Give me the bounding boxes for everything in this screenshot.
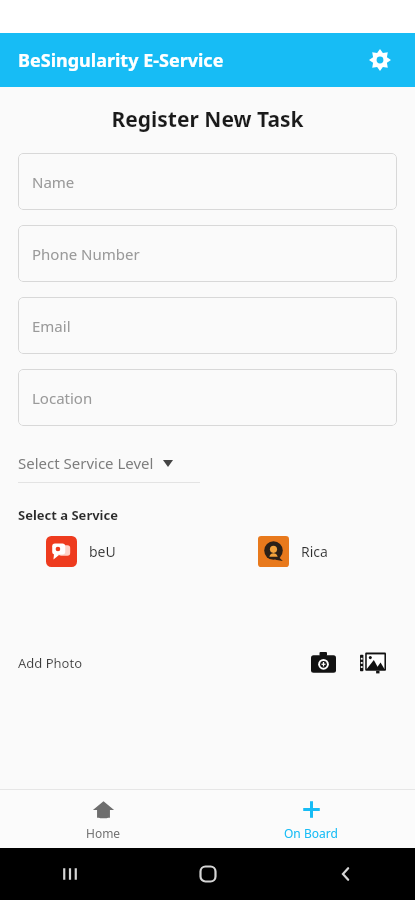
button[interactable]: Take photo bbox=[305, 645, 341, 681]
staticText: Home bbox=[86, 825, 121, 841]
button[interactable]: Pick from gallery bbox=[355, 645, 391, 681]
staticText: Email bbox=[32, 316, 71, 336]
button[interactable]: Select Service Level bbox=[18, 450, 208, 476]
button[interactable]: Settings bbox=[363, 43, 397, 77]
button[interactable]: Email bbox=[18, 297, 397, 354]
button[interactable]: On Board bbox=[207, 790, 415, 848]
staticText: Name bbox=[32, 172, 75, 192]
button[interactable]: Phone Number bbox=[18, 225, 397, 282]
button[interactable]: Location bbox=[18, 369, 397, 426]
staticText: Select Service Level bbox=[18, 453, 154, 473]
staticText: Select a Service bbox=[18, 506, 118, 524]
staticText: Rica bbox=[301, 542, 328, 561]
button[interactable]: Home bbox=[0, 790, 207, 848]
staticText: On Board bbox=[284, 825, 338, 841]
staticText: beU bbox=[89, 542, 116, 561]
button[interactable]: beU bbox=[46, 536, 116, 567]
staticText: BeSingularity E-Service bbox=[18, 48, 224, 73]
button[interactable]: Name bbox=[18, 153, 397, 210]
button[interactable]: Rica bbox=[258, 536, 328, 567]
staticText: Phone Number bbox=[32, 244, 140, 264]
staticText: Location bbox=[32, 388, 93, 408]
staticText: Register New Task bbox=[0, 105, 415, 134]
staticText: Add Photo bbox=[18, 654, 82, 672]
